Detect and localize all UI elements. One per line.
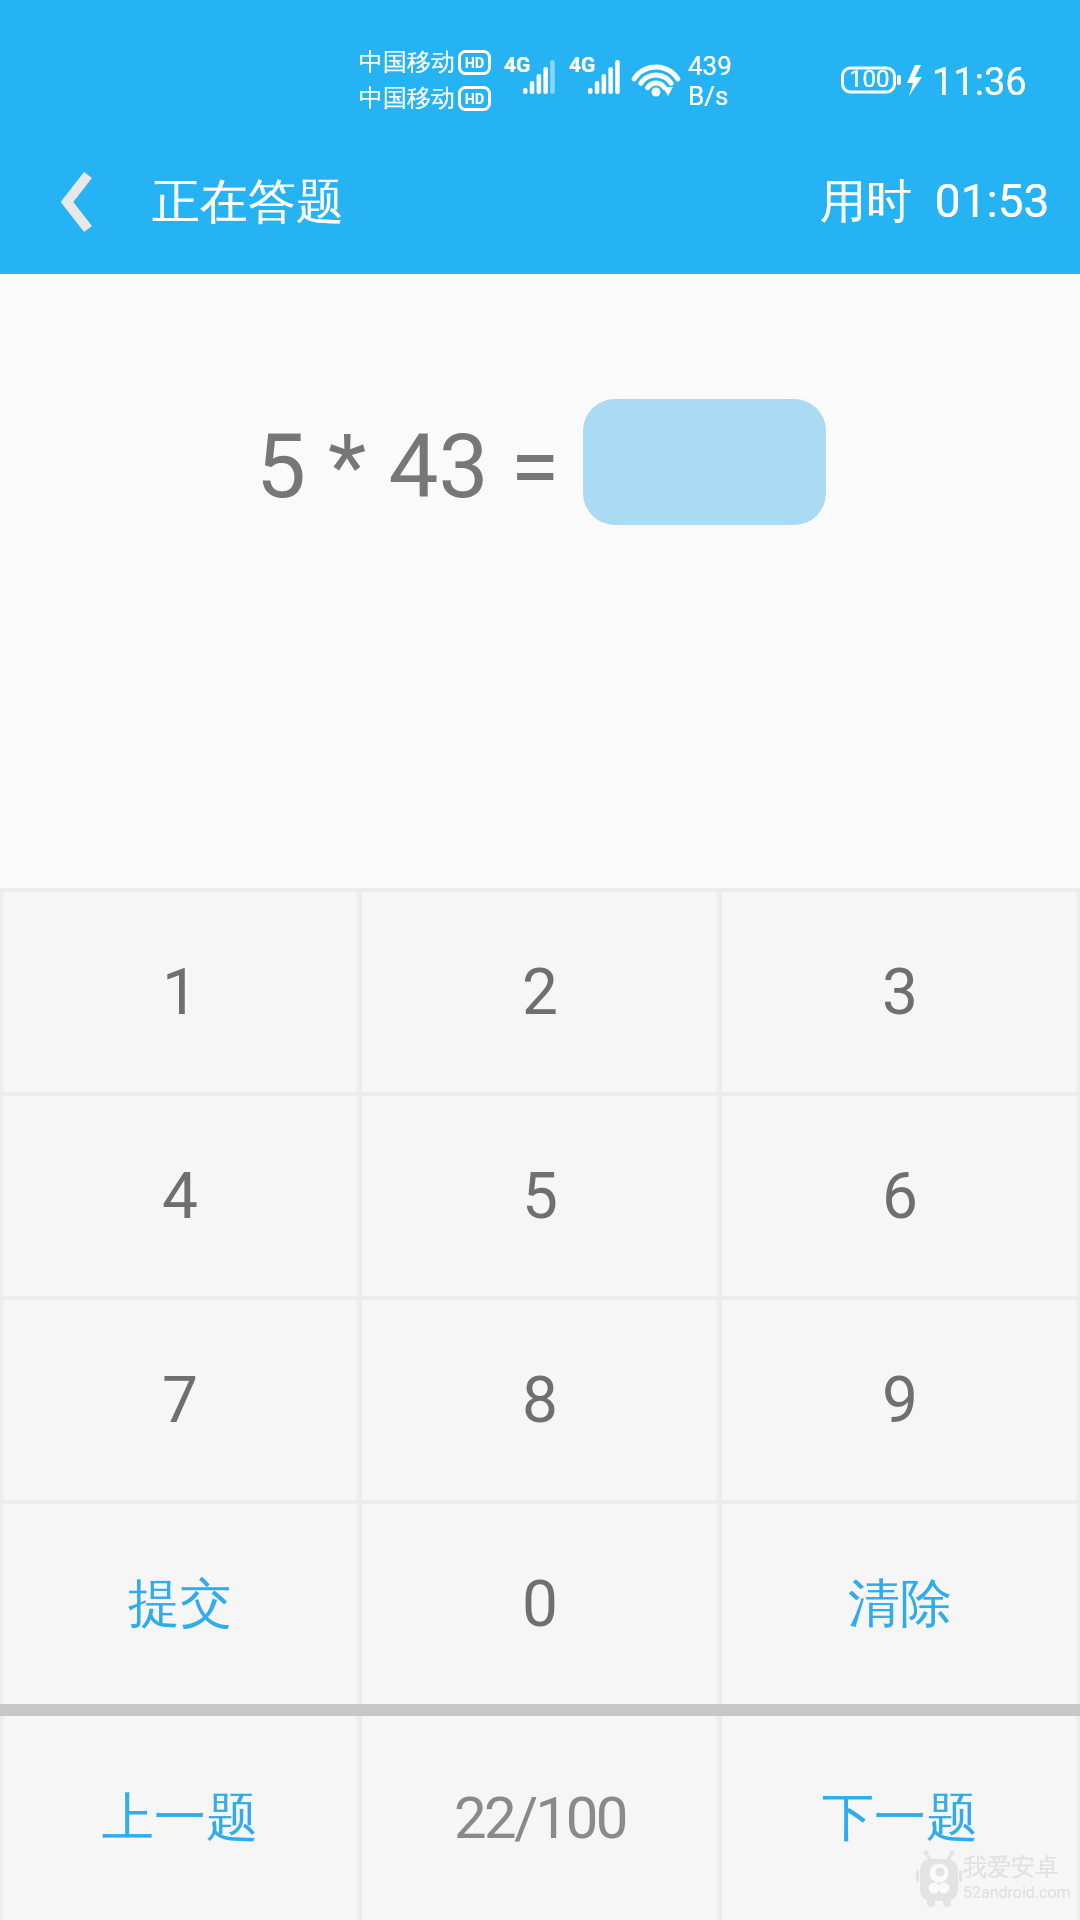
staticText: 7 <box>162 1363 198 1438</box>
staticText: 3 <box>882 955 918 1030</box>
staticText: 用时 01:53 <box>820 173 1050 231</box>
staticText: 8 <box>522 1363 558 1438</box>
staticText: 提交 <box>128 1571 232 1637</box>
button[interactable]: 下一题 <box>722 1716 1077 1920</box>
staticText: 5 <box>522 1159 558 1234</box>
staticText: 0 <box>522 1567 558 1642</box>
staticText: 6 <box>882 1159 918 1234</box>
staticText: 我爱安卓 <box>963 1852 1059 1882</box>
button[interactable]: 提交 <box>3 1504 357 1704</box>
staticText: 4G <box>504 53 531 78</box>
staticText: 439 <box>688 51 732 81</box>
staticText: 4 <box>162 1159 198 1234</box>
button[interactable]: 清除 <box>722 1504 1077 1704</box>
staticText: 上一题 <box>102 1785 258 1851</box>
staticText: 5 * 43 = <box>256 414 582 518</box>
button[interactable]: 2 <box>362 892 717 1092</box>
staticText: 清除 <box>848 1571 952 1637</box>
staticText: 9 <box>882 1363 918 1438</box>
button[interactable]: 9 <box>722 1300 1077 1500</box>
staticText: 22/100 <box>454 1784 626 1852</box>
staticText: B/s <box>688 81 729 111</box>
button[interactable]: 1 <box>3 892 357 1092</box>
button[interactable]: 22/100 <box>362 1716 717 1920</box>
button[interactable]: 6 <box>722 1096 1077 1296</box>
staticText: 下一题 <box>822 1785 978 1851</box>
button[interactable]: 0 <box>362 1504 717 1704</box>
staticText: 52android.com <box>963 1883 1071 1902</box>
staticText: 正在答题 <box>152 172 344 232</box>
staticText: 2 <box>522 955 558 1030</box>
staticText: HD <box>465 91 485 107</box>
button[interactable]: 5 <box>362 1096 717 1296</box>
staticText: 4G <box>569 53 596 78</box>
button[interactable]: 上一题 <box>3 1716 357 1920</box>
button[interactable]: 8 <box>362 1300 717 1500</box>
button[interactable] <box>0 130 130 274</box>
staticText: HD <box>465 55 485 71</box>
button[interactable]: 7 <box>3 1300 357 1500</box>
button[interactable]: 4 <box>3 1096 357 1296</box>
staticText: 中国移动 <box>359 47 455 77</box>
staticText: 100 <box>849 65 890 93</box>
staticText: 中国移动 <box>359 83 455 113</box>
button[interactable]: 3 <box>722 892 1077 1092</box>
staticText: 1 <box>162 955 198 1030</box>
staticText: 11:36 <box>932 60 1027 105</box>
